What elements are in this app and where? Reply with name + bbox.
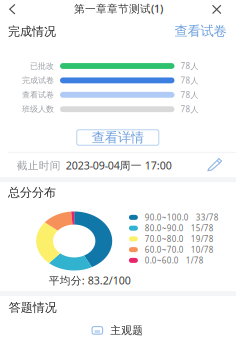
staticText: 78人 [180,104,198,114]
staticText: 78人 [180,61,198,71]
staticText: 查看试卷 [22,90,54,100]
button[interactable]: Close [204,0,230,19]
staticText: 答题情况 [9,300,57,315]
button[interactable]: Edit deadline [203,154,227,174]
staticText: 60.0~70.0 [145,244,184,255]
staticText: 78人 [180,75,198,86]
staticText: 15/78 [191,223,214,233]
staticText: 已批改 [30,61,54,71]
staticText: 第一章章节测试(1) [74,1,163,16]
staticText: 完成试卷 [22,75,54,85]
staticText: 查看试卷 [174,23,226,39]
staticText: 主观题 [110,324,143,337]
staticText: 0.0~60.0 [145,255,179,266]
button[interactable]: 查看详情 [77,130,159,145]
staticText: 班级人数 [22,104,54,114]
staticText: 2023-09-04周一 17:00 [66,158,172,172]
staticText: 33/78 [196,212,219,223]
staticText: 80.0~90.0 [145,223,184,233]
staticText: 截止时间 [17,159,61,172]
staticText: 完成情况 [8,24,56,39]
staticText: 查看详情 [92,129,144,146]
staticText: 1/78 [186,255,204,266]
staticText: 10/78 [191,244,214,255]
button[interactable]: 查看试卷 [171,20,229,42]
button[interactable]: Back [0,0,25,19]
staticText: 70.0~80.0 [145,234,184,244]
staticText: 总分分布 [8,185,56,200]
staticText: 平均分: 83.2/100 [49,273,131,287]
staticText: 78人 [180,89,198,100]
staticText: 90.0~100.0 [145,212,189,223]
staticText: 19/78 [191,234,214,244]
